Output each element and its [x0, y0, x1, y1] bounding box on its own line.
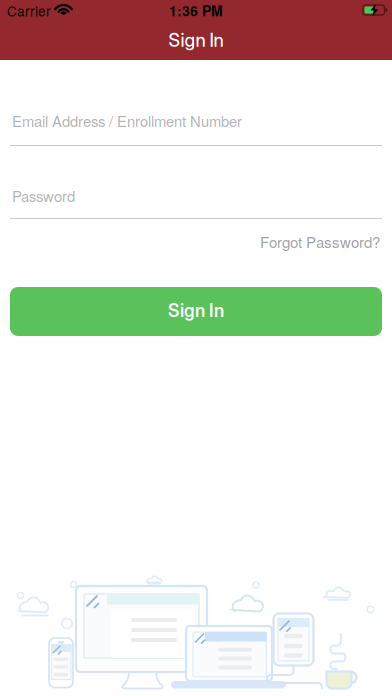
staticText: Sign In	[168, 29, 223, 51]
staticText: Sign In	[168, 300, 224, 321]
button[interactable]: Forgot Password?	[8, 231, 380, 252]
button[interactable]: Password	[10, 185, 382, 219]
staticText: 1:36 PM	[169, 0, 223, 20]
staticText: Carrier	[7, 1, 51, 20]
staticText: Email Address / Enrollment Number	[12, 110, 242, 131]
staticText: Password	[12, 185, 75, 206]
button[interactable]: Email Address / Enrollment Number	[10, 110, 382, 146]
staticText: Forgot Password?	[260, 231, 380, 252]
button[interactable]: Sign In	[10, 287, 382, 336]
